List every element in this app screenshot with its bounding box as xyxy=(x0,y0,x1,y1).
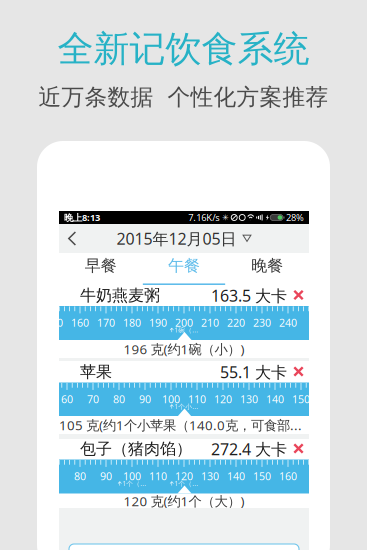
button[interactable]: 午餐 xyxy=(142,253,226,285)
staticText: 230 xyxy=(253,315,271,330)
staticText: 120 xyxy=(175,469,193,483)
staticText: 28% xyxy=(286,211,304,224)
staticText: 100 xyxy=(123,469,141,483)
staticText: 150 xyxy=(45,315,63,330)
staticText: 110 xyxy=(149,469,167,483)
staticText: 晚上8:13 xyxy=(64,211,100,224)
staticText: 140 xyxy=(266,392,284,406)
staticText: 7.16K/s xyxy=(188,211,219,224)
staticText: 1个（... xyxy=(174,479,198,488)
staticText: 190 xyxy=(149,315,167,330)
staticText: 牛奶燕麦粥 xyxy=(80,286,160,305)
staticText: 180 xyxy=(123,315,141,330)
staticText: 近万条数据 个性化方案推荐 xyxy=(38,83,328,111)
button[interactable]: 早餐 xyxy=(59,253,142,285)
staticText: 1碗（... xyxy=(174,326,198,334)
staticText: 100 xyxy=(162,392,180,406)
staticText: 163.5 大卡 xyxy=(211,285,287,306)
button[interactable] xyxy=(69,544,299,550)
staticText: 120 克(约1个（大）) xyxy=(123,492,244,510)
staticText: 80 xyxy=(113,392,125,406)
staticText: 60 xyxy=(61,392,73,406)
staticText: 全新记饮食系统 xyxy=(57,27,309,71)
staticText: 90 xyxy=(100,469,112,483)
staticText: 130 xyxy=(201,469,219,483)
staticText: 1个（... xyxy=(122,479,146,488)
staticText: 晚餐 xyxy=(251,256,283,275)
staticText: 210 xyxy=(201,315,219,330)
staticText: 午餐 xyxy=(168,256,200,275)
button[interactable]: 2015年12月05日 xyxy=(116,224,251,253)
staticText: ✳ xyxy=(222,213,229,222)
staticText: 240 xyxy=(279,315,297,330)
staticText: 2015年12月05日 xyxy=(116,228,236,249)
staticText: 120 xyxy=(214,392,232,406)
staticText: 55.1 大卡 xyxy=(220,361,287,383)
staticText: 170 xyxy=(97,315,115,330)
staticText: 160 xyxy=(279,469,297,483)
staticText: 272.4 大卡 xyxy=(211,438,287,460)
staticText: 70 xyxy=(87,392,99,406)
staticText: 150 xyxy=(253,469,271,483)
staticText: 150 xyxy=(292,392,310,406)
staticText: 90 xyxy=(139,392,151,406)
staticText: 105 克(约1个小苹果（140.0克，可食部分106.0… xyxy=(59,416,309,434)
staticText: 140 xyxy=(227,469,245,483)
staticText: 130 xyxy=(240,392,258,406)
button[interactable]: 牛奶燕麦粥 xyxy=(59,285,309,306)
button[interactable]: Back xyxy=(59,224,83,253)
staticText: 220 xyxy=(227,315,245,330)
staticText: 110 xyxy=(188,392,206,406)
staticText: 1个小... xyxy=(174,402,198,411)
staticText: 苹果 xyxy=(80,362,112,382)
staticText: 200 xyxy=(175,315,193,330)
button[interactable]: 包子（猪肉馅） xyxy=(59,439,309,459)
staticText: 80 xyxy=(74,469,86,483)
staticText: 160 xyxy=(71,315,89,330)
button[interactable]: 苹果 xyxy=(59,361,309,383)
staticText: 196 克(约1碗（小）) xyxy=(123,340,244,358)
button[interactable]: 晚餐 xyxy=(226,253,309,285)
staticText: 包子（猪肉馅） xyxy=(80,439,192,459)
staticText: 早餐 xyxy=(85,256,117,275)
